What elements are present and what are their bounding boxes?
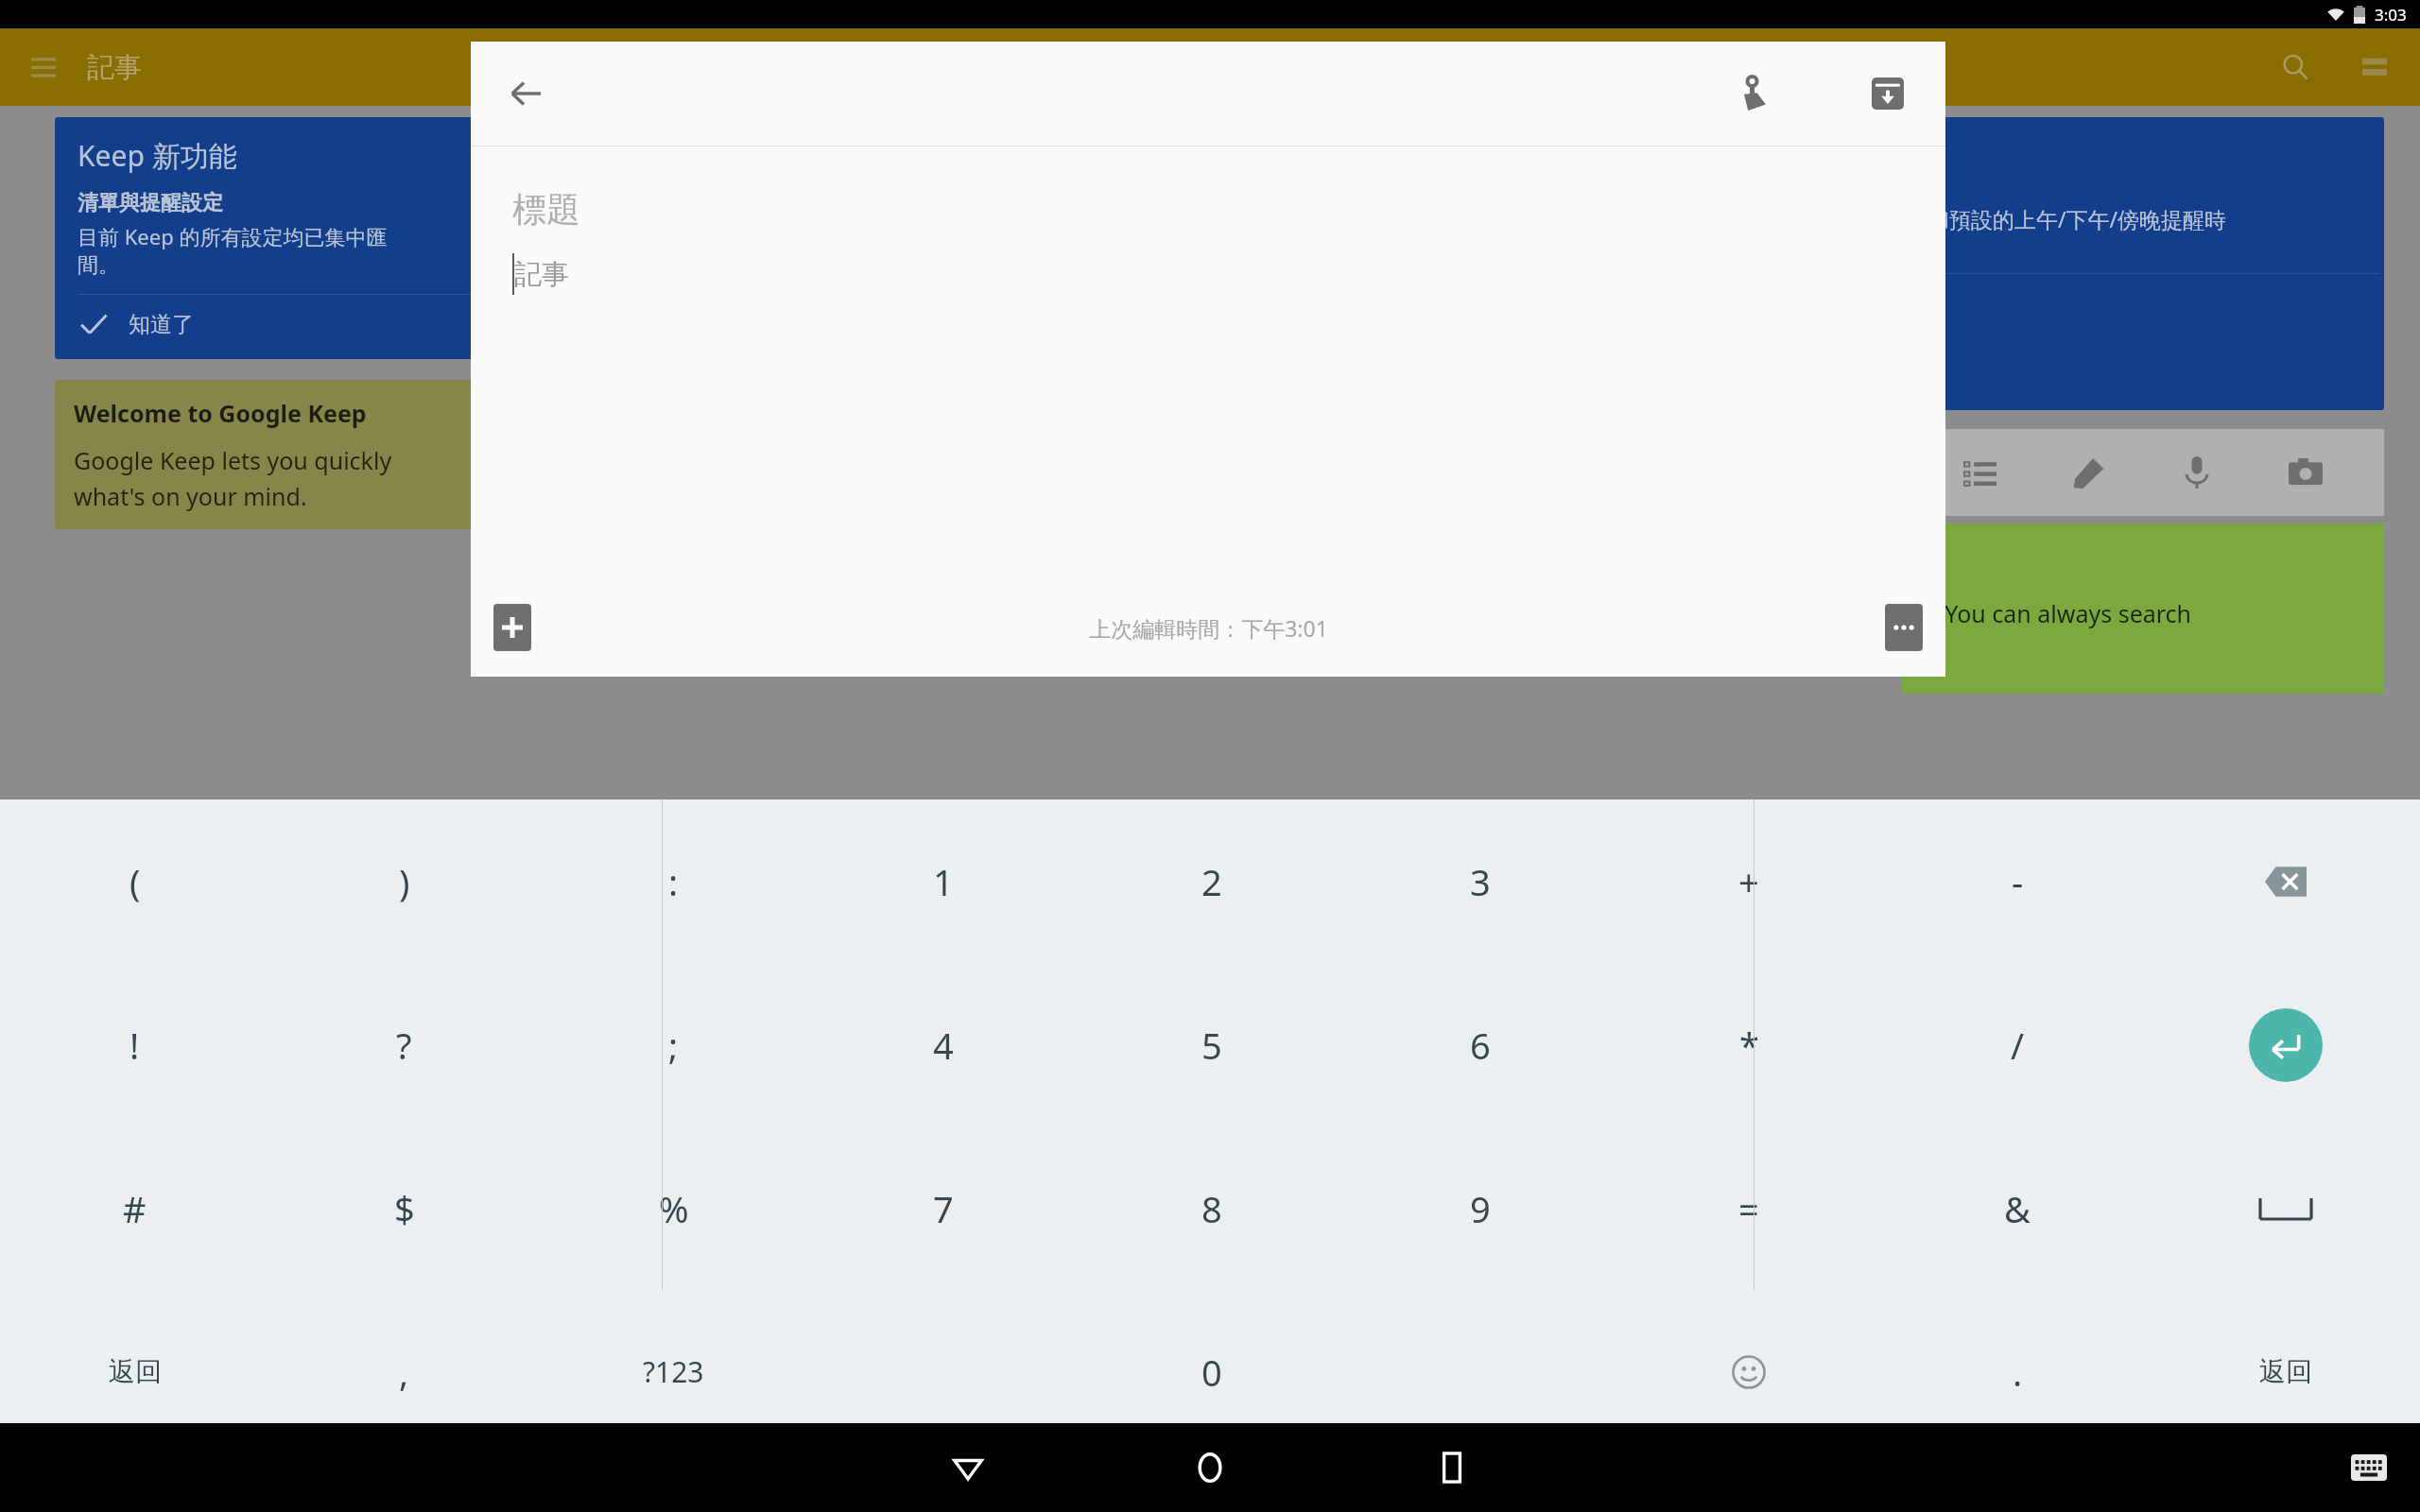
button[interactable]: ! [0, 963, 269, 1126]
button[interactable]: Recents [1407, 1423, 1497, 1512]
staticText: try! You can always search [1902, 597, 2192, 629]
button[interactable]: 為和預設的上午/下午/傍晚提醒時 [1902, 117, 2384, 410]
button[interactable]: Enter [2152, 963, 2420, 1126]
staticText: = [1738, 1184, 1759, 1233]
staticText: % [659, 1184, 689, 1233]
button[interactable]: Search [2271, 43, 2320, 92]
button[interactable]: Pin note [1719, 59, 1789, 129]
button[interactable] [2152, 799, 2420, 963]
button[interactable]: New list [1951, 443, 2010, 502]
staticText: 上次編輯時間：下午3:01 [1089, 613, 1328, 643]
staticText: ) [399, 857, 410, 906]
button[interactable]: New note [2060, 443, 2118, 502]
staticText: + [1738, 857, 1759, 906]
staticText: * [1739, 1021, 1759, 1070]
staticText: ; [668, 1021, 679, 1070]
staticText: 為和預設的上午/下午/傍晚提醒時 [1906, 204, 2227, 233]
staticText: ( [130, 857, 141, 906]
staticText: 5 [1201, 1021, 1222, 1070]
staticText: & [2004, 1184, 2031, 1233]
button[interactable] [1346, 1290, 1615, 1453]
staticText: $ [394, 1184, 415, 1233]
button[interactable]: Back [923, 1423, 1013, 1512]
staticText: 4 [933, 1021, 954, 1070]
button[interactable]: Back [493, 60, 560, 127]
staticText: . [2013, 1348, 2023, 1397]
button[interactable]: $ [269, 1126, 539, 1290]
button[interactable]: 7 [808, 1126, 1078, 1290]
staticText: 3:03 [2375, 4, 2407, 26]
button[interactable]: * [1615, 963, 1883, 1126]
button[interactable]: = [1615, 1126, 1883, 1290]
button[interactable]: Voice note [2168, 443, 2226, 502]
button[interactable]: ; [539, 963, 808, 1126]
staticText: ? [396, 1021, 412, 1070]
button[interactable]: % [539, 1126, 808, 1290]
staticText: 標題 [512, 188, 580, 231]
button[interactable]: 4 [808, 963, 1078, 1126]
button[interactable]: Navigation menu [21, 44, 66, 90]
button[interactable]: ? [269, 963, 539, 1126]
button[interactable]: Switch keyboard [2341, 1439, 2397, 1496]
button[interactable]: 0 [1078, 1290, 1346, 1453]
button[interactable]: . [1883, 1290, 2152, 1453]
staticText: 清單與提醒設定 [78, 190, 223, 216]
staticText: Google Keep lets you quickly what's on y… [74, 444, 392, 512]
staticText: # [123, 1184, 147, 1233]
staticText: 2 [1201, 857, 1222, 906]
staticText: 知道了 [129, 311, 194, 338]
button[interactable]: ( [0, 799, 269, 963]
button[interactable]: 6 [1346, 963, 1615, 1126]
staticText: 9 [1470, 1184, 1491, 1233]
button[interactable]: try! You can always search [1902, 524, 2384, 694]
button[interactable]: - [1883, 799, 2152, 963]
button[interactable]: 1 [808, 799, 1078, 963]
staticText: Keep 新功能 [78, 136, 237, 175]
staticText: - [2012, 857, 2024, 906]
button[interactable]: Photo note [2276, 443, 2335, 502]
button[interactable]: 9 [1346, 1126, 1615, 1290]
staticText: 目前 Keep 的所有設定均已集中匯 間。 [78, 222, 388, 279]
staticText: Welcome to Google Keep [74, 397, 367, 429]
staticText: 0 [1201, 1348, 1222, 1397]
staticText: 1 [933, 857, 954, 906]
staticText: ?123 [643, 1352, 704, 1391]
button[interactable]: ) [269, 799, 539, 963]
button[interactable]: & [1883, 1126, 2152, 1290]
button[interactable]: + [1615, 799, 1883, 963]
staticText: 記事 [514, 257, 569, 292]
staticText: 3 [1470, 857, 1491, 906]
button[interactable]: : [539, 799, 808, 963]
button[interactable] [1615, 1290, 1883, 1453]
button[interactable]: / [1883, 963, 2152, 1126]
button[interactable]: 3 [1346, 799, 1615, 963]
staticText: / [2011, 1021, 2025, 1070]
button[interactable]: Welcome to Google Keep [55, 380, 499, 529]
button[interactable]: 返回 [0, 1290, 269, 1453]
staticText: 記事 [87, 50, 142, 85]
button[interactable]: Toggle view [2350, 43, 2399, 92]
button[interactable]: 返回 [2152, 1290, 2420, 1453]
staticText: ! [130, 1021, 140, 1070]
button[interactable]: Keep 新功能 [55, 117, 499, 359]
button[interactable]: Home [1165, 1423, 1255, 1512]
button[interactable]: More options [1885, 604, 1923, 651]
other: Enter [2249, 1008, 2323, 1082]
staticText: : [668, 857, 679, 906]
button[interactable] [808, 1290, 1078, 1453]
staticText: 7 [933, 1184, 954, 1233]
staticText: , [399, 1348, 409, 1397]
staticText: 8 [1201, 1184, 1222, 1233]
staticText: 返回 [2259, 1355, 2312, 1388]
button[interactable]: # [0, 1126, 269, 1290]
button[interactable]: 2 [1078, 799, 1346, 963]
button[interactable]: 8 [1078, 1126, 1346, 1290]
button[interactable]: Add [493, 604, 531, 651]
button[interactable]: 5 [1078, 963, 1346, 1126]
staticText: 6 [1470, 1021, 1491, 1070]
staticText: 返回 [109, 1355, 162, 1388]
button[interactable]: Archive [1853, 59, 1923, 129]
button[interactable] [2152, 1126, 2420, 1290]
button[interactable]: , [269, 1290, 539, 1453]
button[interactable]: ?123 [539, 1290, 808, 1453]
